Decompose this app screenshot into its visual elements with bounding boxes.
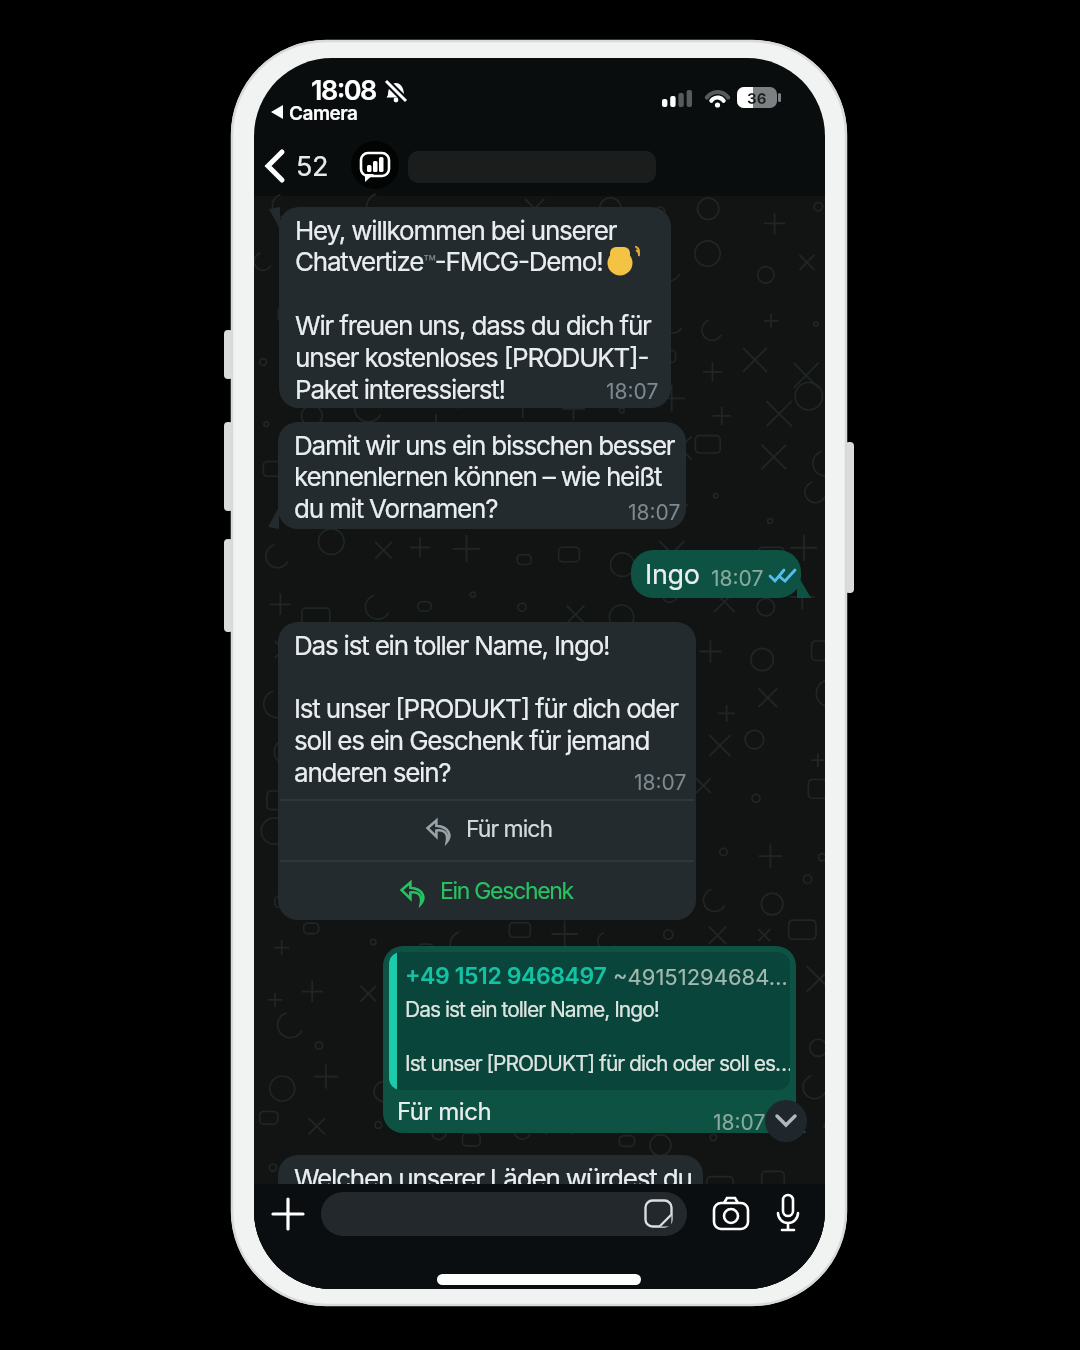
button[interactable] <box>714 1198 748 1230</box>
staticText: +49 1512 9468497 <box>405 962 607 990</box>
staticText: Das ist ein toller Name, Ingo! <box>405 997 659 1022</box>
staticText: Das ist ein toller Name, Ingo! Ist unser… <box>294 630 678 788</box>
staticText: ~49151294684… <box>613 964 788 991</box>
button[interactable]: +49 1512 9468497 <box>383 946 796 1133</box>
staticText: 36 <box>747 89 767 107</box>
staticText: 18:08 <box>311 74 376 107</box>
staticText: Welchen unserer Läden würdest du <box>294 1163 692 1194</box>
button[interactable]: Ingo <box>631 550 801 598</box>
staticText: Für mich <box>466 815 552 843</box>
staticText: 18:07 <box>634 770 687 795</box>
staticText: 18:07 <box>628 500 681 525</box>
staticText: Hey, willkommen bei unserer Chatvertize™… <box>295 215 651 405</box>
staticText: Ingo <box>645 558 700 591</box>
button[interactable] <box>777 1195 799 1233</box>
staticText: Für mich <box>397 1097 492 1126</box>
button[interactable]: Hey, willkommen bei unserer Chatvertize™… <box>279 207 671 408</box>
button[interactable] <box>644 1199 674 1229</box>
staticText: 18:07 <box>713 1110 766 1133</box>
button[interactable] <box>765 1100 807 1142</box>
button[interactable] <box>264 150 286 182</box>
button[interactable] <box>351 141 399 189</box>
button[interactable]: Für mich <box>278 800 696 860</box>
staticText: Damit wir uns ein bisschen besser kennen… <box>294 430 675 524</box>
staticText: Camera <box>289 102 358 125</box>
button[interactable] <box>321 1192 687 1236</box>
staticText: 18:07 <box>606 379 659 404</box>
staticText: 52 <box>296 150 328 183</box>
button[interactable] <box>273 1199 303 1229</box>
staticText: Ein Geschenk <box>440 877 573 905</box>
button[interactable]: Ein Geschenk <box>278 861 696 920</box>
button[interactable]: Damit wir uns ein bisschen besser kennen… <box>278 422 686 529</box>
staticText: 18:07 <box>711 566 764 591</box>
staticText: Ist unser [PRODUKT] für dich oder soll e… <box>405 1051 790 1076</box>
